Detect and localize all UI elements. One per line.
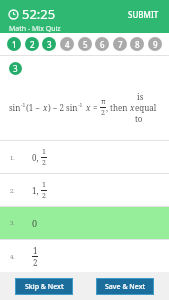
button[interactable]: 7 [113, 37, 127, 51]
staticText: SUBMIT [128, 9, 159, 20]
staticText: , then [106, 102, 130, 113]
staticText: is equal to [135, 91, 163, 124]
button[interactable]: 9 [148, 37, 162, 51]
staticText: 0, [32, 152, 41, 163]
staticText: (1 − [26, 102, 43, 113]
staticText: 6 [100, 39, 105, 50]
staticText: 1 [33, 245, 38, 256]
button[interactable]: SUBMIT [126, 7, 161, 22]
button[interactable]: 5 [78, 37, 92, 51]
button[interactable]: 4 [60, 37, 74, 51]
staticText: 3. [10, 219, 15, 227]
button[interactable]: 6 [95, 37, 109, 51]
button[interactable]: 3. [0, 207, 169, 239]
staticText: 2 [101, 108, 105, 118]
staticText: 2. [10, 187, 15, 195]
staticText: -1 [78, 102, 83, 109]
staticText: 2 [33, 257, 38, 268]
staticText: = [91, 102, 100, 113]
staticText: 3 [13, 63, 18, 74]
staticText: 1, [32, 185, 41, 196]
staticText: Math - Mix Quiz [9, 24, 61, 33]
staticText: Save & Next [105, 282, 146, 292]
staticText: Skip & Next [25, 282, 64, 292]
staticText: 8 [135, 39, 140, 50]
button[interactable]: 1. [0, 141, 169, 173]
staticText: 7 [118, 39, 123, 50]
button[interactable]: Save & Next [96, 278, 154, 295]
staticText: 1. [10, 154, 15, 162]
staticText: 2 [42, 158, 46, 168]
staticText: 3 [47, 39, 52, 50]
staticText: 2 [42, 191, 46, 201]
button[interactable]: 8 [130, 37, 144, 51]
staticText: 52:25 [22, 5, 56, 23]
staticText: ) − 2 sin [48, 102, 78, 113]
button[interactable]: 4. [0, 240, 169, 272]
staticText: 9 [153, 39, 158, 50]
staticText: sin [9, 102, 21, 113]
staticText: 2 [30, 39, 35, 50]
staticText: 0 [32, 217, 38, 229]
staticText: 4 [65, 39, 70, 50]
button[interactable]: 2. [0, 174, 169, 206]
staticText: 4. [10, 253, 15, 261]
staticText: 1 [42, 180, 46, 190]
staticText: 1 [42, 147, 46, 157]
staticText: x [43, 102, 48, 113]
staticText: 1 [12, 39, 17, 50]
staticText: π [101, 97, 106, 107]
button[interactable]: 1 [7, 37, 21, 51]
button[interactable]: 3 [42, 37, 56, 51]
staticText: -1 [21, 102, 26, 109]
staticText: x [86, 102, 91, 113]
staticText: x [130, 102, 135, 113]
staticText: 5 [83, 39, 88, 50]
button[interactable]: 2 [25, 37, 39, 51]
button[interactable]: Skip & Next [15, 278, 73, 295]
